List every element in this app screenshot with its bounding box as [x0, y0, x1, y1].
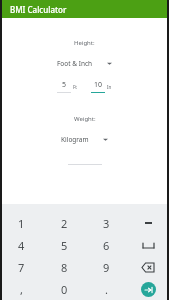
staticText: 10 — [91, 80, 105, 90]
staticText: 3 — [103, 216, 110, 231]
button[interactable]: 1 — [0, 212, 43, 234]
button[interactable]: 2 — [43, 212, 85, 234]
staticText: 7 — [18, 260, 25, 275]
button[interactable]: Backspace — [127, 256, 169, 278]
staticText: 1 — [18, 216, 25, 231]
button[interactable]: Dash — [127, 212, 169, 234]
button[interactable]: . — [85, 278, 127, 300]
staticText: BMI Calculator — [10, 4, 67, 15]
staticText: 5 — [57, 80, 71, 90]
staticText: , — [20, 282, 23, 297]
staticText: Kilogram — [61, 135, 89, 144]
button[interactable]: Space — [127, 234, 169, 256]
staticText: In — [107, 84, 112, 90]
button[interactable]: Enter — [127, 278, 169, 300]
button[interactable]: 0 — [43, 278, 85, 300]
staticText: Ft — [73, 84, 77, 90]
button[interactable]: 5 — [43, 234, 85, 256]
staticText: 4 — [18, 238, 25, 253]
staticText: Height: — [74, 39, 95, 47]
staticText: 2 — [61, 216, 68, 231]
button[interactable]: 3 — [85, 212, 127, 234]
button[interactable]: 7 — [0, 256, 43, 278]
staticText: Weight: — [74, 115, 96, 123]
staticText: . — [105, 282, 108, 297]
staticText: 8 — [61, 260, 68, 275]
staticText: 6 — [103, 238, 110, 253]
button[interactable]: , — [0, 278, 43, 300]
button[interactable]: Foot & Inch — [53, 57, 116, 70]
staticText: 0 — [61, 282, 68, 297]
button[interactable]: 8 — [43, 256, 85, 278]
button[interactable]: 5 — [57, 80, 77, 93]
button[interactable]: Kilogram — [57, 133, 112, 146]
staticText: 9 — [103, 260, 110, 275]
button[interactable]: 10 — [91, 80, 112, 93]
button[interactable]: 4 — [0, 234, 43, 256]
button[interactable]: 6 — [85, 234, 127, 256]
staticText: 5 — [61, 238, 68, 253]
staticText: Foot & Inch — [57, 59, 93, 68]
button[interactable]: 9 — [85, 256, 127, 278]
